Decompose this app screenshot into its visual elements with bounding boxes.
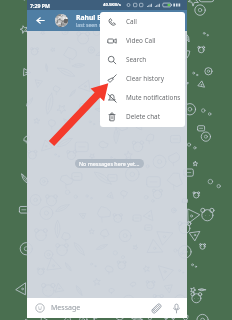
button[interactable]: Emoji [35, 303, 45, 313]
staticText: Delete chat [126, 112, 161, 121]
button[interactable]: Attach file [151, 303, 162, 314]
staticText: 40.5KB/s [103, 2, 121, 8]
button[interactable]: Record voice message [171, 303, 182, 314]
staticText: Search [126, 55, 147, 64]
button[interactable]: Delete chat [100, 107, 185, 126]
button[interactable]: Search [100, 50, 185, 69]
button[interactable]: Clear history [100, 69, 185, 88]
staticText: last seen recently [76, 21, 119, 28]
staticText: 7:29 PM [30, 2, 50, 9]
staticText: Rahul B [76, 13, 102, 22]
button[interactable]: Call [100, 12, 185, 31]
staticText: Video Call [126, 36, 156, 45]
button[interactable]: Back [34, 14, 47, 27]
staticText: No messages here yet... [79, 160, 140, 167]
staticText: Mute notifications [126, 93, 181, 102]
staticText: Clear history [126, 74, 164, 83]
staticText: Call [126, 17, 137, 26]
staticText: Message [51, 303, 81, 313]
button[interactable]: Mute notifications [100, 88, 185, 107]
button[interactable]: Profile photo [55, 14, 68, 27]
button[interactable]: Video Call [100, 31, 185, 50]
